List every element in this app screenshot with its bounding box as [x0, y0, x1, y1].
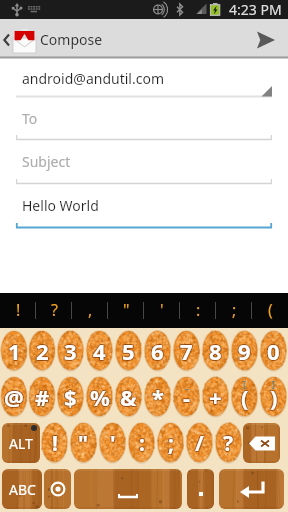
- staticText: (: [240, 381, 248, 411]
- staticText: ": [77, 428, 88, 457]
- button[interactable]: 1: [0, 328, 28, 374]
- button[interactable]: To: [0, 98, 288, 141]
- button[interactable]: ": [108, 293, 144, 328]
- button[interactable]: (: [230, 374, 259, 420]
- button[interactable]: android@andutil.com: [0, 59, 288, 98]
- button[interactable]: Hello World: [0, 185, 288, 229]
- staticText: 6: [152, 337, 165, 367]
- button[interactable]: ?: [214, 420, 243, 466]
- staticText: 4: [93, 335, 106, 365]
- staticText: 5: [123, 335, 136, 365]
- button[interactable]: ': [144, 293, 180, 328]
- staticText: 2: [36, 337, 49, 367]
- button[interactable]: #: [28, 374, 56, 420]
- staticText: 4: [92, 337, 105, 367]
- button[interactable]: :: [180, 293, 216, 328]
- staticText: -: [182, 382, 190, 412]
- staticText: %: [91, 381, 111, 411]
- button[interactable]: 0: [259, 328, 288, 374]
- button[interactable]: 6: [143, 328, 172, 374]
- staticText: ': [160, 299, 164, 321]
- staticText: 6: [152, 335, 165, 365]
- button[interactable]: ,: [72, 293, 108, 328]
- staticText: 1: [9, 337, 22, 367]
- button[interactable]: $: [56, 374, 85, 420]
- staticText: 2: [35, 336, 48, 366]
- staticText: $: [64, 382, 77, 412]
- staticText: :: [140, 429, 146, 458]
- button[interactable]: &: [114, 374, 143, 420]
- button[interactable]: ?: [36, 293, 72, 328]
- staticText: ": [123, 299, 130, 321]
- button[interactable]: 7: [172, 328, 201, 374]
- staticText: *: [153, 381, 165, 411]
- button[interactable]: ': [98, 420, 127, 466]
- button[interactable]: ;: [156, 420, 185, 466]
- staticText: 1: [9, 336, 22, 366]
- button[interactable]: Backspace: [243, 423, 280, 463]
- staticText: %: [89, 383, 109, 413]
- button[interactable]: Subject: [0, 141, 288, 185]
- staticText: 3: [64, 336, 77, 366]
- button[interactable]: ;: [216, 293, 252, 328]
- staticText: Hello World: [22, 196, 99, 215]
- button[interactable]: :: [127, 420, 156, 466]
- button[interactable]: Settings: [44, 469, 71, 509]
- button[interactable]: %: [85, 374, 114, 420]
- button[interactable]: Compose: [0, 20, 103, 59]
- staticText: :: [138, 429, 144, 458]
- button[interactable]: (: [252, 293, 288, 328]
- staticText: %: [89, 382, 109, 412]
- staticText: :: [140, 430, 146, 459]
- button[interactable]: Space: [74, 469, 182, 509]
- button[interactable]: *: [143, 374, 172, 420]
- button[interactable]: /: [185, 420, 214, 466]
- staticText: 0: [267, 336, 280, 366]
- button[interactable]: [187, 469, 214, 509]
- staticText: @: [5, 381, 25, 411]
- staticText: $: [65, 381, 78, 411]
- staticText: 3: [63, 337, 76, 367]
- button[interactable]: ABC: [2, 469, 42, 509]
- button[interactable]: ): [259, 374, 288, 420]
- staticText: ): [271, 381, 279, 411]
- staticText: 9: [238, 335, 251, 365]
- button[interactable]: !: [0, 293, 36, 328]
- button[interactable]: ALT: [2, 423, 40, 463]
- staticText: 7: [179, 336, 192, 366]
- button[interactable]: 9: [230, 328, 259, 374]
- staticText: #: [36, 382, 51, 412]
- staticText: 1: [8, 336, 21, 366]
- staticText: ALT: [9, 434, 33, 453]
- staticText: %: [91, 382, 111, 412]
- button[interactable]: 8: [201, 328, 230, 374]
- button[interactable]: ": [69, 420, 98, 466]
- button[interactable]: @: [0, 374, 28, 420]
- staticText: 4: [94, 335, 107, 365]
- staticText: 5: [121, 335, 134, 365]
- staticText: #: [35, 381, 50, 411]
- staticText: &: [120, 383, 137, 413]
- staticText: (: [240, 382, 248, 412]
- staticText: 2: [37, 336, 50, 366]
- staticText: *: [153, 383, 165, 413]
- button[interactable]: 5: [114, 328, 143, 374]
- staticText: ?: [224, 430, 235, 459]
- staticText: !: [53, 428, 59, 457]
- button[interactable]: -: [172, 374, 201, 420]
- button[interactable]: !: [40, 420, 69, 466]
- button[interactable]: 4: [85, 328, 114, 374]
- staticText: !: [51, 430, 57, 459]
- staticText: ': [110, 430, 116, 459]
- staticText: :: [139, 429, 145, 458]
- staticText: 5: [122, 336, 135, 366]
- staticText: (: [268, 299, 273, 321]
- staticText: ?: [223, 429, 234, 458]
- button[interactable]: Send: [244, 20, 288, 59]
- button[interactable]: 3: [56, 328, 85, 374]
- button[interactable]: +: [201, 374, 230, 420]
- button[interactable]: Enter: [219, 469, 284, 509]
- staticText: 2: [35, 335, 48, 365]
- button[interactable]: 2: [28, 328, 56, 374]
- staticText: 1: [8, 335, 21, 365]
